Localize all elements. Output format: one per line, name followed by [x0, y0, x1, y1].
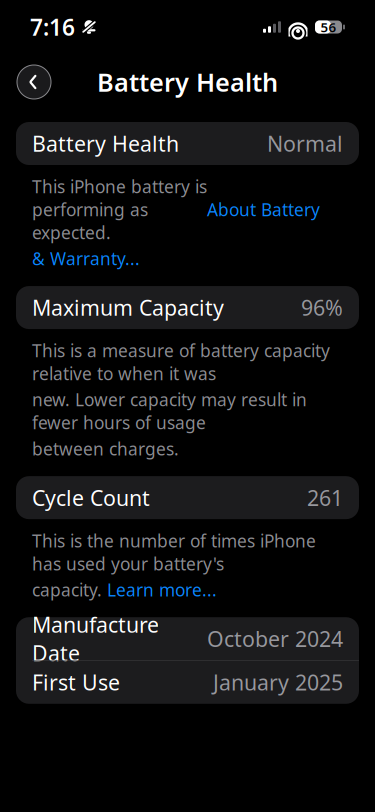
button[interactable]: Maximum Capacity: [16, 286, 359, 329]
staticText: October 2024: [207, 624, 343, 653]
staticText: 56: [320, 18, 336, 36]
staticText: Cycle Count: [32, 483, 150, 512]
staticText: between charges.: [32, 437, 179, 460]
staticText: 261: [307, 483, 343, 512]
button[interactable]: Manufacture Date: [16, 617, 359, 660]
staticText: First Use: [32, 668, 120, 696]
staticText: About Battery: [207, 198, 320, 221]
staticText: Battery Health: [32, 129, 179, 158]
button[interactable]: Back: [14, 62, 54, 102]
staticText: Learn more...: [107, 578, 217, 601]
button[interactable]: Cycle Count: [16, 476, 359, 519]
staticText: This is the number of times iPhone has u…: [32, 529, 316, 575]
staticText: Normal: [267, 129, 343, 158]
staticText: This iPhone battery is performing as exp…: [32, 175, 207, 244]
staticText: January 2025: [213, 668, 343, 696]
staticText: Maximum Capacity: [32, 293, 224, 322]
staticText: 7:16: [30, 12, 75, 42]
staticText: This is a measure of battery capacity re…: [32, 339, 330, 385]
staticText: capacity.: [32, 578, 107, 601]
staticText: new. Lower capacity may result in fewer …: [32, 388, 307, 434]
staticText: 96%: [301, 293, 343, 322]
button[interactable]: Battery Health: [16, 122, 359, 165]
staticText: & Warranty...: [32, 247, 140, 270]
staticText: Manufacture Date: [32, 610, 159, 667]
button[interactable]: First Use: [16, 661, 359, 704]
staticText: Battery Health: [97, 65, 278, 99]
